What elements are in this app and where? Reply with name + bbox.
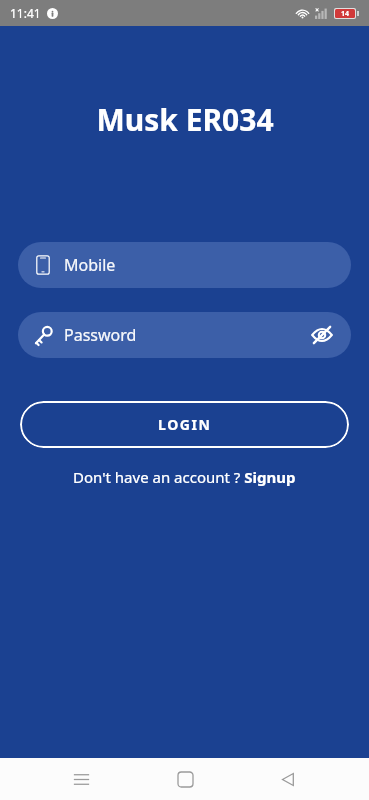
staticText: LOGIN (158, 415, 212, 434)
button[interactable]: Home (163, 758, 207, 800)
button[interactable]: Mobile (18, 242, 351, 288)
staticText: Mobile (64, 254, 116, 276)
button[interactable]: Back (266, 758, 310, 800)
staticText: 14 (341, 9, 350, 18)
staticText: 11:41 (10, 5, 41, 21)
button[interactable]: LOGIN (20, 401, 349, 448)
staticText: Don't have an account ? Signup (73, 467, 296, 487)
button[interactable]: Toggle password visibility (309, 322, 335, 348)
button[interactable]: Don't have an account ? Signup (65, 463, 304, 491)
button[interactable]: Recent apps (59, 758, 103, 800)
staticText: Password (64, 324, 137, 346)
button[interactable]: Password (18, 312, 351, 358)
staticText: Musk ER034 (96, 99, 274, 140)
